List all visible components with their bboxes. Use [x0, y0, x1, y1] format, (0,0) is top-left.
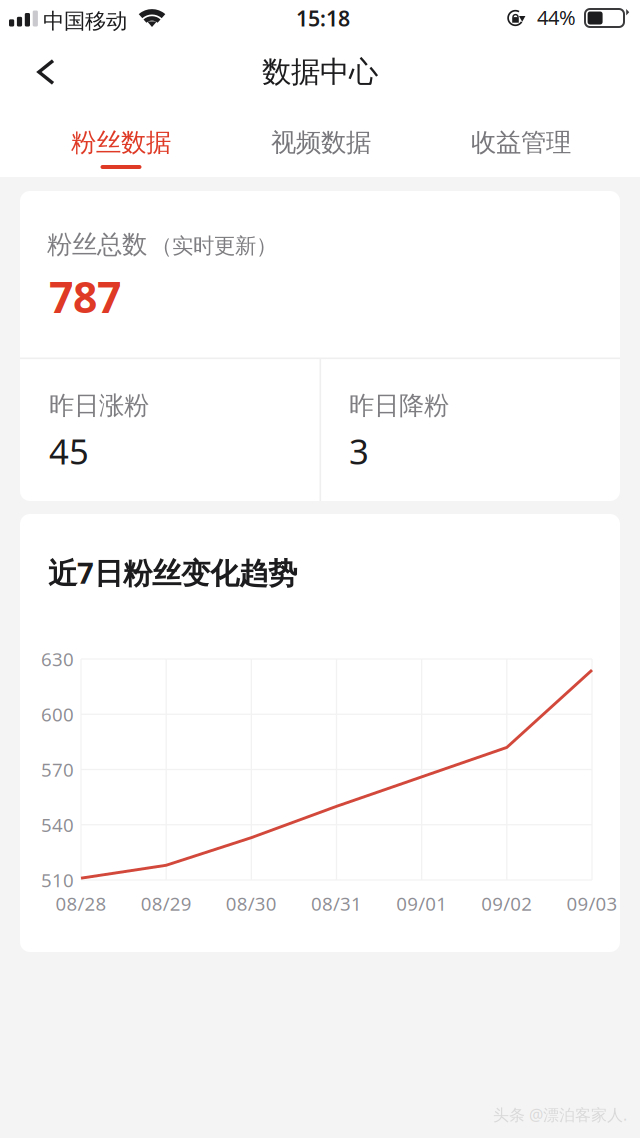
staticText: 数据中心	[262, 54, 378, 90]
staticText: 08/31	[311, 891, 362, 916]
button[interactable]: 收益管理	[451, 103, 591, 177]
staticText: 08/28	[55, 891, 106, 916]
staticText: 视频数据	[271, 127, 371, 158]
staticText: 15:18	[296, 4, 350, 32]
staticText: 粉丝数据	[71, 127, 171, 158]
staticText: 540	[41, 812, 74, 837]
staticText: 头条 @漂泊客家人.	[493, 1104, 627, 1125]
staticText: 09/01	[396, 891, 447, 916]
staticText: 600	[41, 702, 74, 727]
staticText: 44%	[537, 4, 576, 31]
staticText: 3	[349, 428, 369, 474]
staticText: 09/03	[566, 891, 617, 916]
staticText: 08/29	[141, 891, 192, 916]
staticText: 630	[41, 646, 74, 671]
staticText: 09/02	[481, 891, 532, 916]
staticText: （实时更新）	[151, 233, 277, 259]
staticText: 昨日涨粉	[49, 390, 149, 421]
button[interactable]: 粉丝数据	[51, 103, 191, 177]
staticText: 粉丝总数	[47, 229, 147, 260]
staticText: 近7日粉丝变化趋势	[48, 553, 297, 592]
staticText: 45	[49, 428, 89, 474]
staticText: 510	[41, 867, 74, 892]
staticText: 570	[41, 757, 74, 782]
staticText: 中国移动	[43, 8, 127, 34]
staticText: 787	[49, 268, 121, 325]
staticText: 08/30	[226, 891, 277, 916]
staticText: 收益管理	[471, 127, 571, 158]
button[interactable]: 视频数据	[251, 103, 391, 177]
staticText: 昨日降粉	[349, 390, 449, 421]
button[interactable]: Back	[20, 41, 72, 103]
